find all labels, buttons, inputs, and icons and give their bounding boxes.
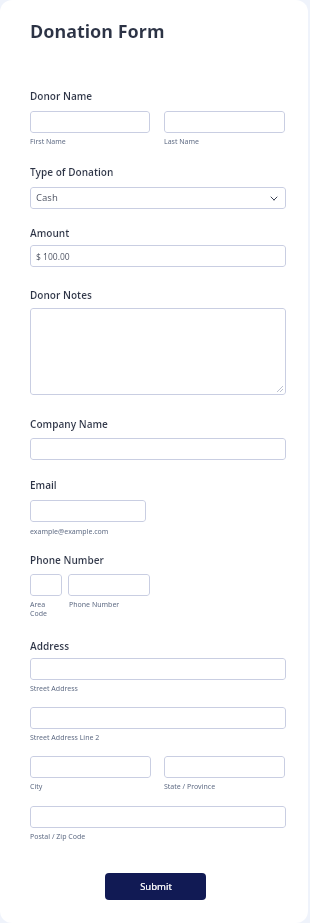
button[interactable]	[164, 111, 285, 133]
button[interactable]	[30, 756, 151, 778]
staticText: Submit	[140, 880, 172, 893]
staticText: Amount	[30, 226, 70, 240]
button[interactable]	[68, 574, 150, 596]
button[interactable]: Cash	[30, 187, 286, 209]
staticText: First Name	[30, 137, 66, 147]
staticText: Street Address	[30, 684, 78, 694]
button[interactable]	[30, 658, 286, 680]
button[interactable]: $ 100.00	[30, 245, 286, 267]
staticText: Code	[30, 609, 47, 619]
staticText: Address	[30, 639, 70, 653]
staticText: City	[30, 782, 43, 792]
staticText: Street Address Line 2	[30, 733, 100, 743]
staticText: example@example.com	[30, 527, 109, 537]
staticText: Last Name	[164, 137, 200, 147]
staticText: Donor Notes	[30, 288, 92, 302]
staticText: Type of Donation	[30, 165, 114, 179]
staticText: $ 100.00	[36, 251, 70, 263]
staticText: Company Name	[30, 417, 108, 431]
button[interactable]	[30, 111, 150, 133]
staticText: Email	[30, 478, 57, 492]
staticText: Cash	[36, 191, 58, 204]
button[interactable]: Submit	[105, 873, 206, 900]
staticText: Postal / Zip Code	[30, 832, 86, 842]
staticText: Phone Number	[69, 600, 120, 610]
button[interactable]	[164, 756, 285, 778]
button[interactable]	[30, 500, 146, 522]
button[interactable]	[30, 574, 62, 596]
staticText: Area	[30, 600, 46, 610]
staticText: Donor Name	[30, 89, 93, 103]
staticText: State / Province	[164, 782, 216, 792]
button[interactable]	[30, 438, 286, 460]
staticText: Donation Form	[30, 19, 165, 44]
button[interactable]	[30, 806, 286, 828]
button[interactable]	[30, 707, 286, 729]
staticText: Phone Number	[30, 553, 104, 567]
button[interactable]	[30, 308, 286, 395]
